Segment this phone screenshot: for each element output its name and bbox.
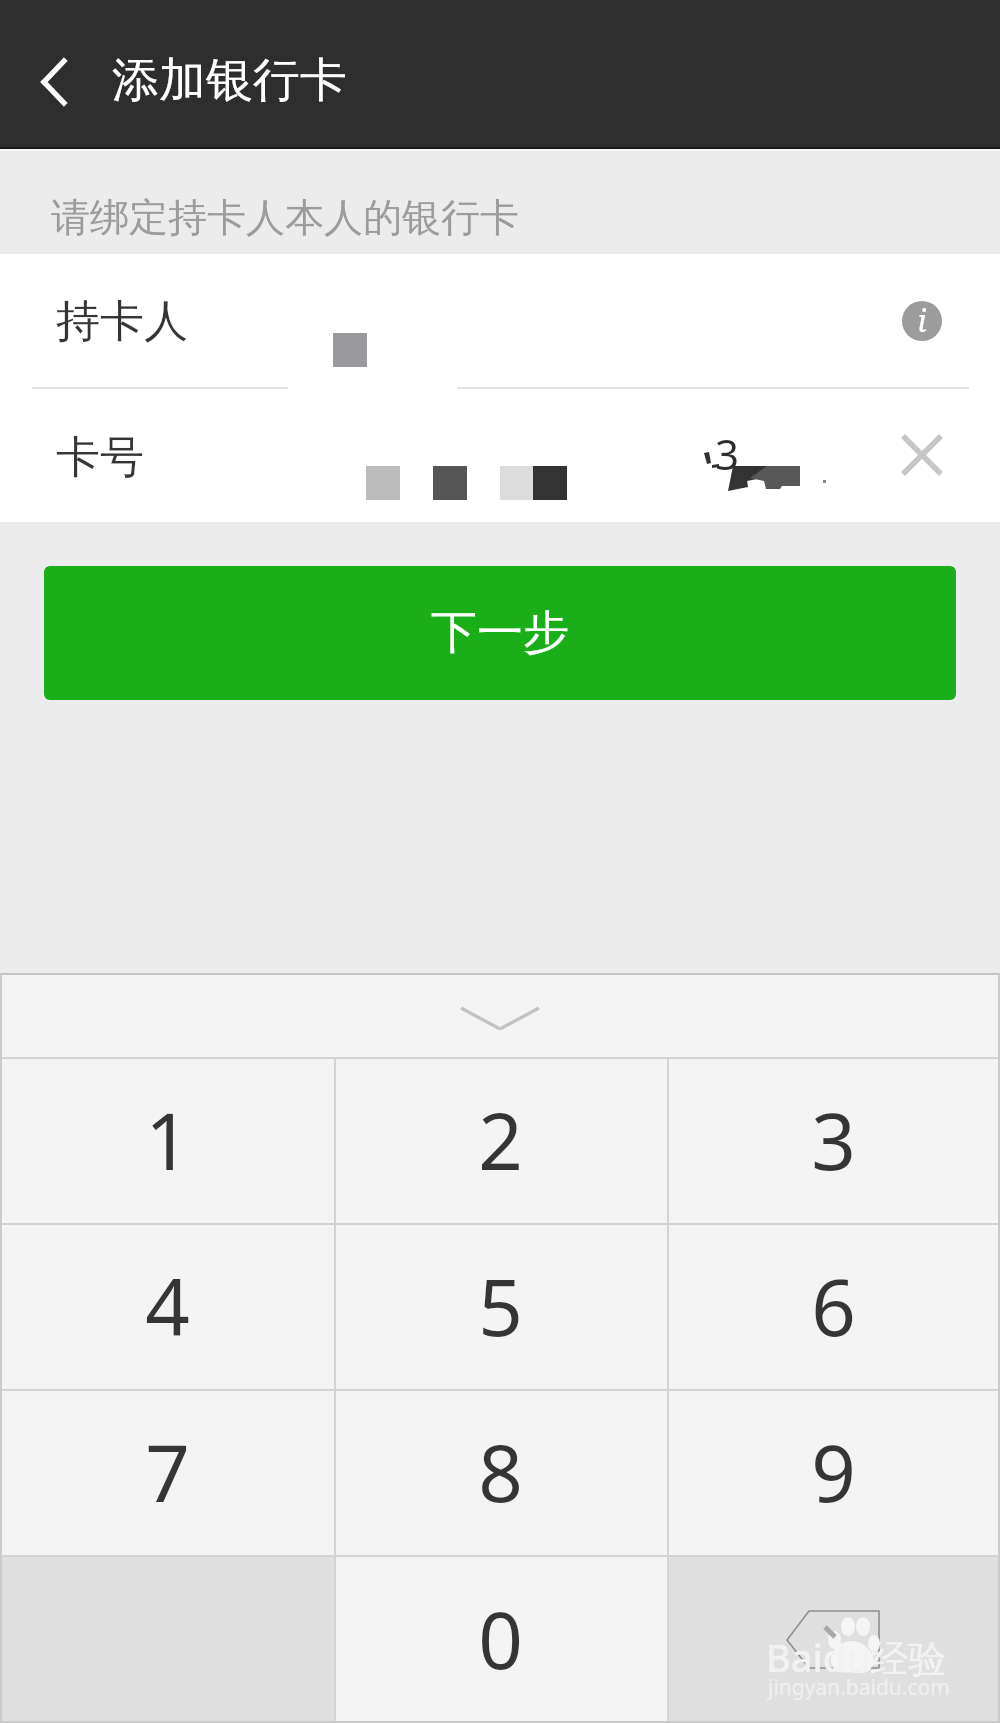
button[interactable]: 1 (0, 1057, 334, 1223)
staticText: 添加银行卡 (112, 51, 347, 110)
staticText: 3 (811, 1087, 856, 1193)
button[interactable]: 8 (334, 1389, 667, 1555)
button[interactable]: Cardholder info (884, 283, 960, 359)
staticText: 5 (478, 1253, 523, 1359)
button[interactable]: 0 (334, 1555, 667, 1723)
staticText: 9 (811, 1419, 856, 1525)
button[interactable]: 2 (334, 1057, 667, 1223)
button[interactable]: Clear card number (884, 417, 960, 493)
staticText: 请绑定持卡人本人的银行卡 (51, 193, 519, 242)
staticText: 6 (811, 1253, 856, 1359)
staticText: 2 (478, 1087, 523, 1193)
button[interactable]: 下一步 (44, 566, 956, 700)
staticText: 1 (145, 1087, 190, 1193)
button[interactable]: blank key (667, 1555, 1000, 1723)
button[interactable]: Back (9, 37, 99, 127)
staticText: Baidu经验 (766, 1631, 947, 1683)
button[interactable]: 9 (667, 1389, 1000, 1555)
button[interactable]: 5 (334, 1223, 667, 1389)
button[interactable]: 3 (667, 1057, 1000, 1223)
staticText: 0 (478, 1586, 523, 1692)
button[interactable]: 7 (0, 1389, 334, 1555)
staticText: jingyan.baidu.com (768, 1673, 950, 1702)
staticText: 7 (145, 1419, 190, 1525)
staticText: 4 (145, 1253, 190, 1359)
button[interactable]: 4 (0, 1223, 334, 1389)
staticText: 卡号 (56, 430, 144, 485)
button[interactable]: 6 (667, 1223, 1000, 1389)
button[interactable]: Hide keyboard (0, 973, 1000, 1057)
staticText: i (917, 300, 927, 341)
staticText: 8 (478, 1419, 523, 1525)
staticText: 3 (715, 425, 740, 482)
staticText: 下一步 (431, 604, 569, 662)
staticText: 持卡人 (56, 294, 188, 349)
